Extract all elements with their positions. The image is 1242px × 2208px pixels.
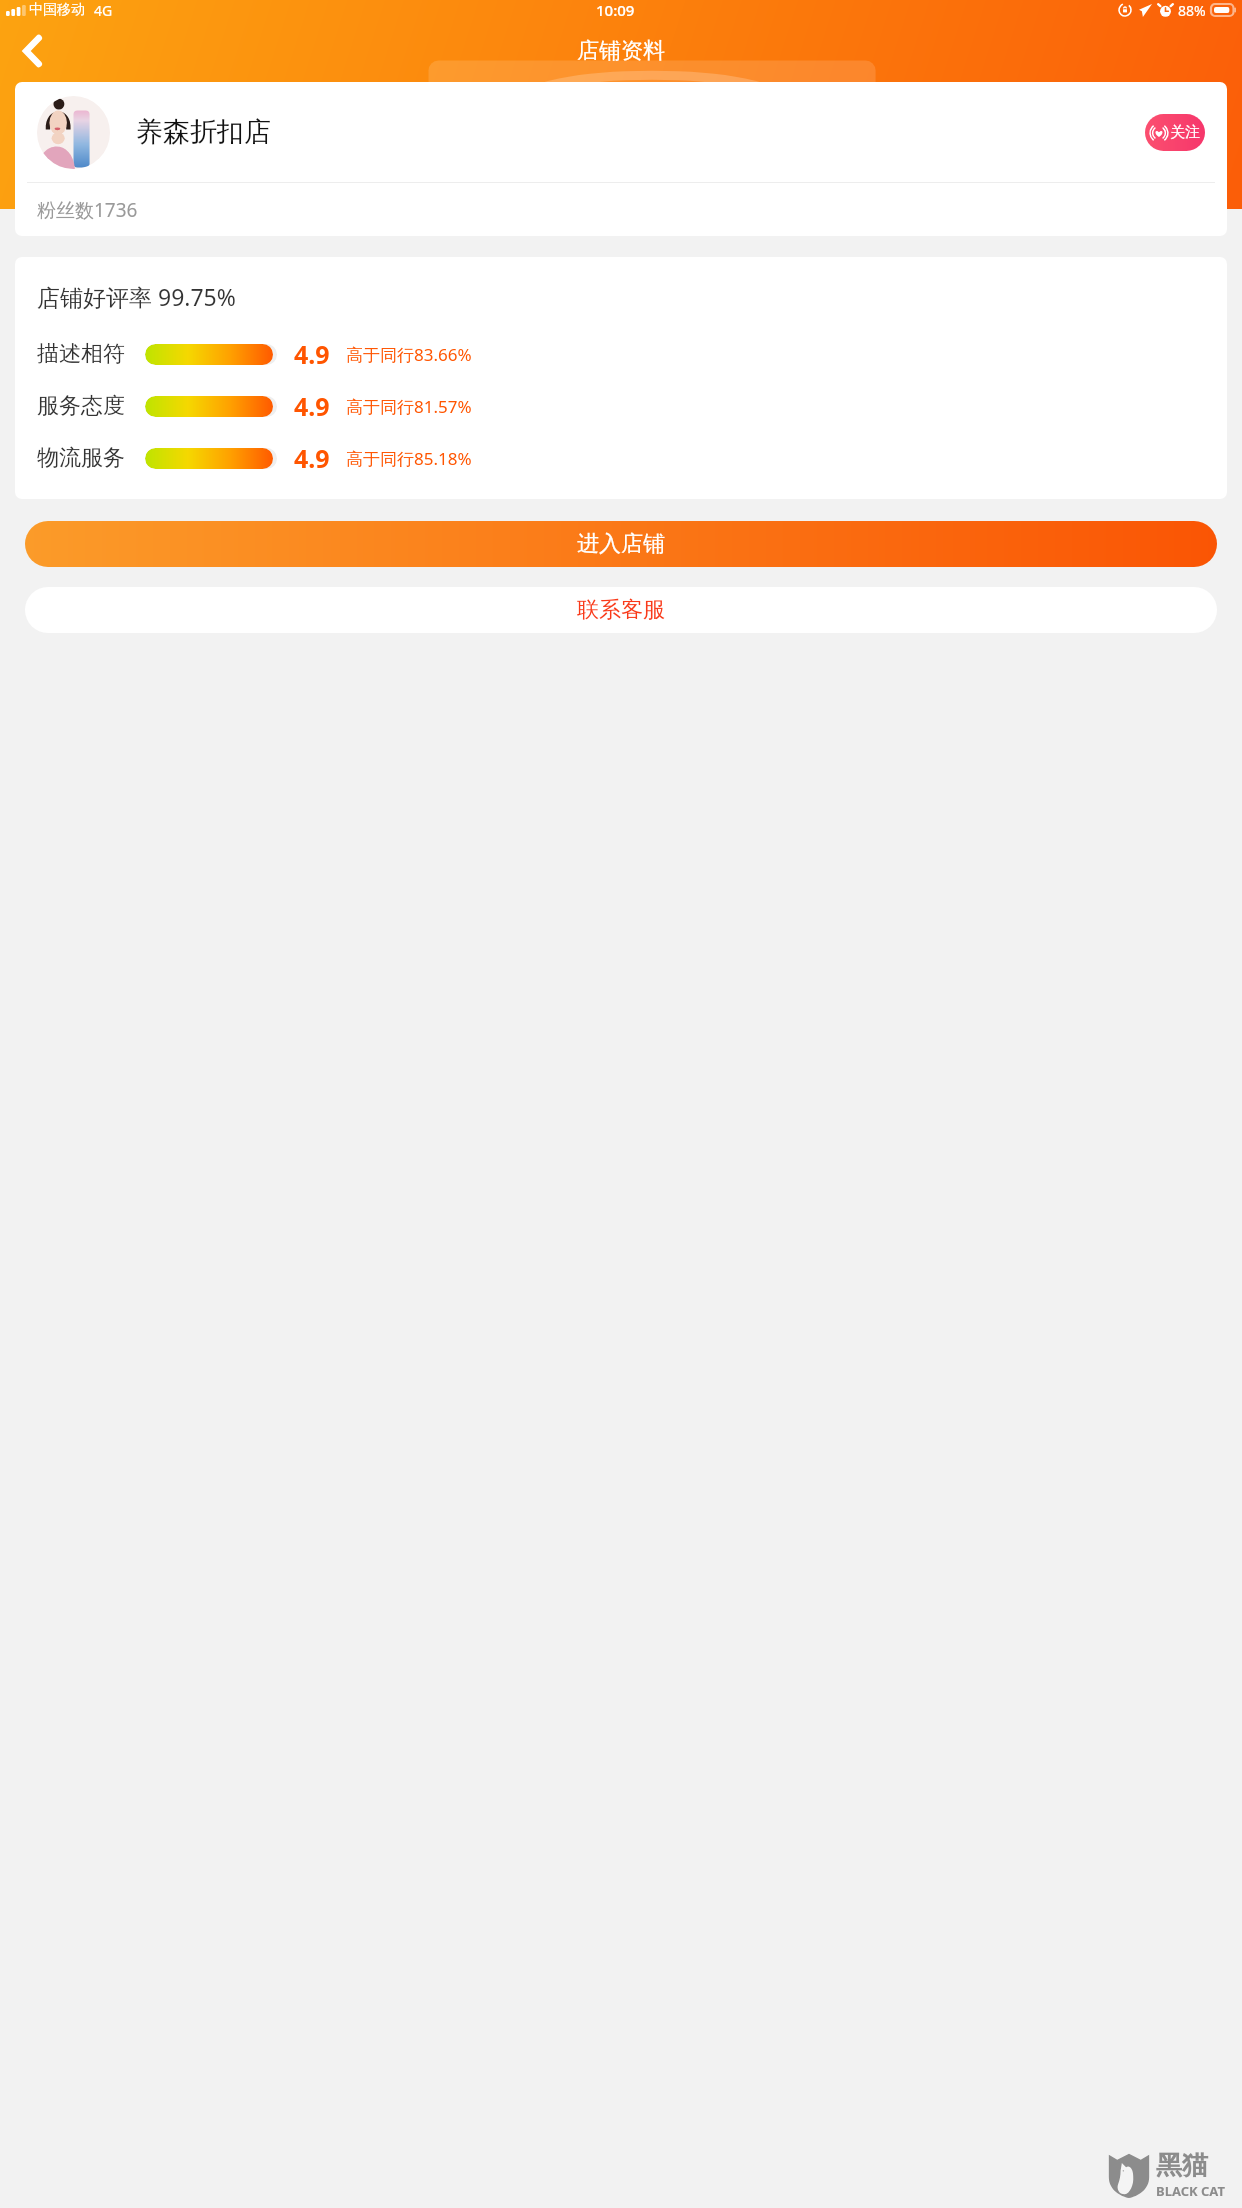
staticText: 高于同行85.18% <box>346 447 472 470</box>
staticText: 高于同行81.57% <box>346 395 472 418</box>
button[interactable]: Back <box>6 25 58 77</box>
staticText: 养森折扣店 <box>136 115 271 149</box>
staticText: 4.9 <box>294 441 330 475</box>
staticText: 4.9 <box>294 337 330 371</box>
staticText: 黑猫 <box>1156 2149 1208 2182</box>
staticText: 服务态度 <box>37 392 125 420</box>
staticText: 店铺好评率 99.75% <box>37 281 236 312</box>
staticText: 进入店铺 <box>577 530 665 558</box>
button[interactable]: 关注 <box>1145 114 1205 151</box>
staticText: 联系客服 <box>577 596 665 624</box>
staticText: 88% <box>1178 1 1206 20</box>
staticText: 描述相符 <box>37 340 125 368</box>
staticText: 高于同行83.66% <box>346 343 472 366</box>
staticText: 4G <box>94 1 113 20</box>
button[interactable]: 进入店铺 <box>25 521 1217 567</box>
button[interactable]: 养森折扣店 <box>15 82 1227 182</box>
staticText: 关注 <box>1170 123 1200 142</box>
staticText: 中国移动 <box>29 1 85 19</box>
button[interactable]: 粉丝数1736 <box>15 183 1227 236</box>
staticText: 店铺资料 <box>577 37 665 65</box>
staticText: 10:09 <box>596 0 635 20</box>
button[interactable]: 联系客服 <box>25 587 1217 633</box>
staticText: BLACK CAT <box>1156 2182 1225 2200</box>
staticText: 4.9 <box>294 389 330 423</box>
staticText: 物流服务 <box>37 444 125 472</box>
staticText: 粉丝数1736 <box>37 197 138 223</box>
